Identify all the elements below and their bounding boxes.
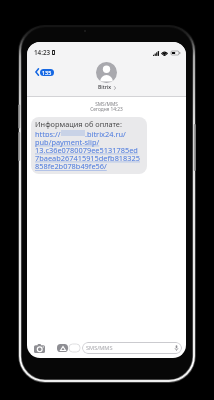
staticText: SMS/MMS Сегодня 14:23 [90,101,123,112]
staticText: https:// [35,129,61,137]
staticText: 135 [42,69,52,76]
staticText: SMS/MMS [86,344,113,352]
staticText: Информация об оплате: [35,119,122,129]
button[interactable]: Информация об оплате: [31,117,147,174]
staticText: 14:23 [34,48,51,57]
staticText: pub/payment-slip/ 13.c36e0780079ee513178… [35,137,140,172]
button[interactable]: SMS/MMS [82,342,182,354]
staticText: .bitrix24.ru/ [85,129,126,137]
button[interactable]: Back [33,66,56,78]
button[interactable]: Apps [57,344,68,352]
staticText: Bitrix [98,84,112,91]
button[interactable]: Camera [34,344,45,353]
